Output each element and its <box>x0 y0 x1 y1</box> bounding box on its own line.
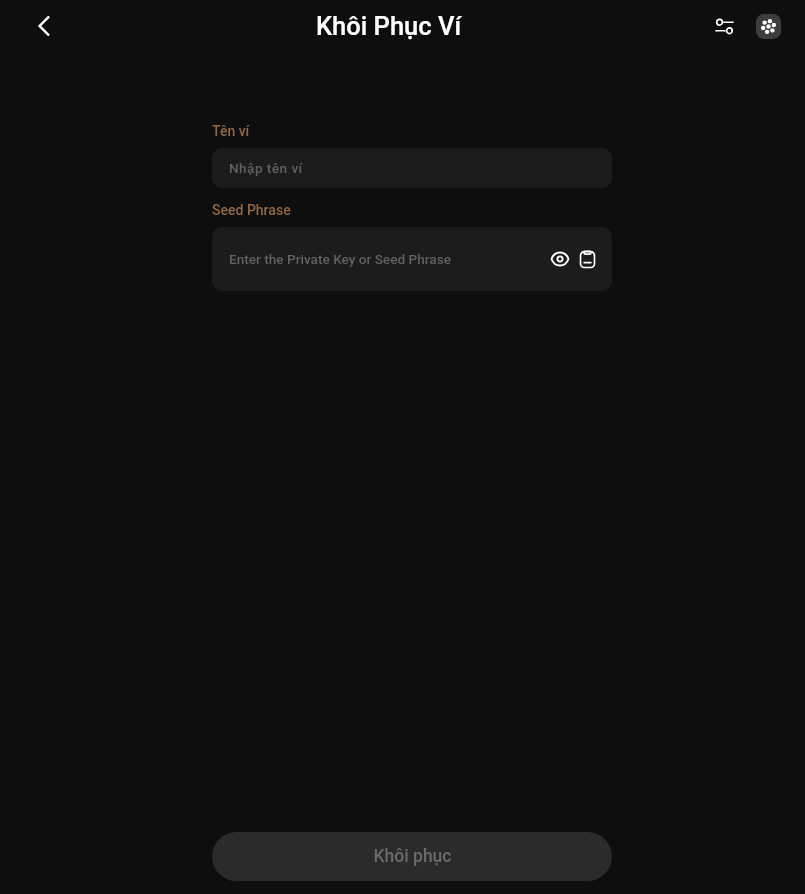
button[interactable]: Show seed phrase <box>547 246 573 272</box>
staticText: Nhập tên ví <box>229 160 303 176</box>
button[interactable]: Enter the Private Key or Seed Phrase <box>212 227 612 291</box>
staticText: Khôi phục <box>373 846 452 867</box>
button[interactable]: Settings <box>709 11 739 41</box>
button[interactable]: Back <box>27 9 61 43</box>
button[interactable]: Paste from clipboard <box>574 246 600 272</box>
staticText: Tên ví <box>212 123 250 139</box>
staticText: Enter the Private Key or Seed Phrase <box>229 251 452 267</box>
staticText: Seed Phrase <box>212 202 291 218</box>
button[interactable]: Nhập tên ví <box>212 148 612 188</box>
button[interactable]: Networks <box>756 14 781 39</box>
button[interactable]: Khôi phục <box>212 832 612 881</box>
staticText: Khôi Phục Ví <box>316 11 462 41</box>
